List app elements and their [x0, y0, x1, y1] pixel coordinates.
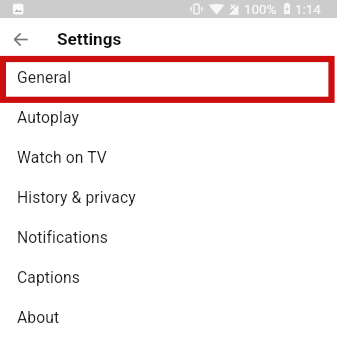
staticText: About	[17, 308, 60, 326]
staticText: History & privacy	[17, 188, 136, 206]
button[interactable]: History & privacy	[0, 179, 337, 219]
staticText: Notifications	[17, 228, 109, 246]
staticText: Captions	[17, 268, 81, 286]
button[interactable]: About	[0, 299, 337, 339]
button[interactable]: Notifications	[0, 219, 337, 259]
staticText: General	[17, 68, 72, 86]
button[interactable]: Autoplay	[0, 99, 337, 139]
staticText: Autoplay	[17, 108, 79, 126]
staticText: 1:14	[295, 2, 321, 18]
button[interactable]: Captions	[0, 259, 337, 299]
staticText: Watch on TV	[17, 148, 107, 166]
button[interactable]: Watch on TV	[0, 139, 337, 179]
button[interactable]: Back	[8, 24, 39, 55]
button[interactable]: General	[0, 59, 337, 99]
staticText: 100%	[244, 2, 277, 18]
staticText: Settings	[57, 29, 122, 49]
